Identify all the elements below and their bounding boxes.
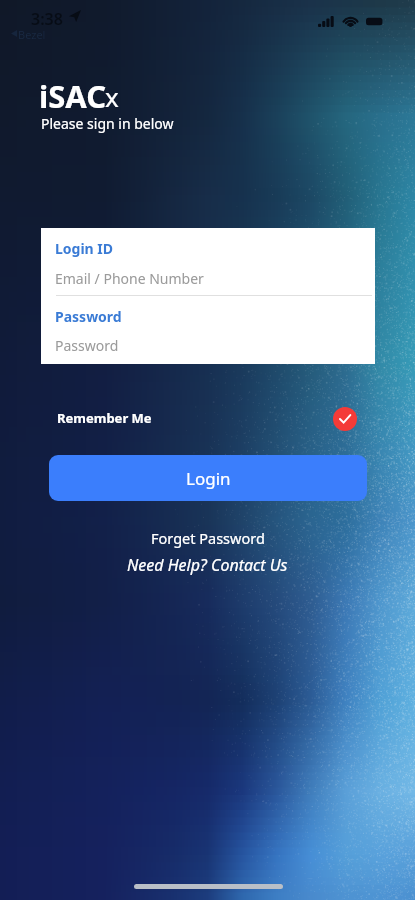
staticText: Password bbox=[55, 336, 119, 355]
staticText: Email / Phone Number bbox=[55, 269, 204, 288]
button[interactable]: Need Help? Contact Us bbox=[121, 552, 294, 578]
staticText: 3:38 bbox=[31, 8, 63, 30]
button[interactable]: Remember me bbox=[333, 407, 357, 431]
staticText: Please sign in below bbox=[41, 114, 174, 133]
staticText: iSAC bbox=[39, 75, 107, 117]
staticText: Login ID bbox=[55, 239, 114, 258]
staticText: x bbox=[105, 79, 119, 114]
button[interactable]: Forget Password bbox=[145, 526, 271, 550]
staticText: Password bbox=[55, 307, 122, 326]
staticText: Bezel bbox=[18, 27, 46, 42]
button[interactable]: Remember Me bbox=[57, 409, 152, 427]
staticText: Login bbox=[186, 467, 231, 490]
button[interactable]: Login bbox=[49, 455, 367, 501]
